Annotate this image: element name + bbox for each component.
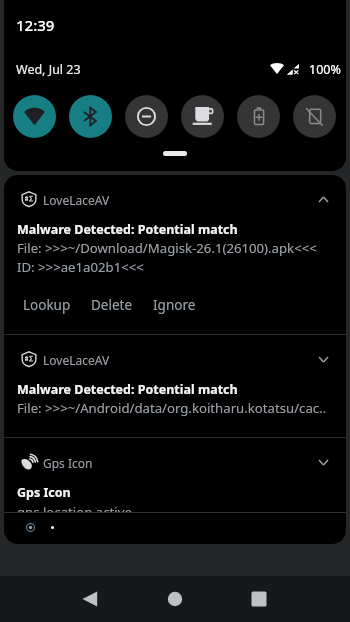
button[interactable]: Do not disturb bbox=[125, 95, 168, 138]
button[interactable]: Bluetooth bbox=[69, 95, 112, 138]
button[interactable]: Expand notification bbox=[309, 345, 337, 373]
staticText: Malware Detected: Potential match bbox=[17, 381, 238, 398]
staticText: gps location active bbox=[17, 503, 132, 512]
staticText: File: >>>~/Download/Magisk-26.1(26100).a… bbox=[17, 239, 317, 257]
staticText: Gps Icon bbox=[43, 455, 93, 471]
staticText: LoveLaceAV bbox=[43, 352, 110, 368]
button[interactable]: Caffeine bbox=[181, 95, 224, 138]
button[interactable]: Delete bbox=[81, 293, 143, 317]
staticText: Wed, Jul 23 bbox=[16, 61, 81, 78]
staticText: File: >>>~/Android/data/org.koitharu.kot… bbox=[17, 399, 327, 417]
staticText: 100% bbox=[309, 61, 341, 78]
button[interactable]: Lookup bbox=[13, 293, 81, 317]
button[interactable]: Wi-Fi bbox=[13, 95, 56, 138]
button[interactable]: Battery saver bbox=[237, 95, 280, 138]
staticText: Ignore bbox=[153, 296, 196, 314]
staticText: Malware Detected: Potential match bbox=[17, 221, 238, 238]
button[interactable]: Auto rotate bbox=[293, 95, 336, 138]
staticText: Lookup bbox=[23, 296, 71, 314]
button[interactable]: Recent apps bbox=[236, 576, 282, 622]
button[interactable]: Ignore bbox=[143, 293, 206, 317]
button[interactable]: Collapse notification bbox=[309, 185, 337, 213]
staticText: LoveLaceAV bbox=[43, 192, 110, 208]
button[interactable]: Home bbox=[152, 576, 198, 622]
staticText: Gps Icon bbox=[17, 484, 71, 501]
button[interactable]: Expand notification bbox=[309, 448, 337, 476]
staticText: ID: >>>ae1a02b1<<< bbox=[17, 258, 144, 276]
button[interactable]: Back bbox=[67, 576, 113, 622]
staticText: 12:39 bbox=[16, 15, 55, 35]
staticText: Delete bbox=[91, 296, 133, 314]
